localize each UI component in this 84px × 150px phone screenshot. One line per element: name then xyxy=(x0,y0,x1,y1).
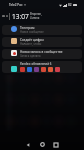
staticText: Нажмите, чтобы xyxy=(20,42,42,46)
staticText: Запись сделана xyxy=(20,54,41,58)
staticText: Новое сообщение xyxy=(20,30,44,34)
button[interactable]: Новая запись в сообществе xyxy=(2,49,82,59)
staticText: 4 июля xyxy=(30,16,40,20)
button[interactable]: Home xyxy=(35,139,49,150)
staticText: Новая запись в сообществе xyxy=(20,50,63,54)
staticText: 13:07 xyxy=(12,12,29,21)
staticText: Tele2 Рос xyxy=(9,3,23,7)
button[interactable]: Телеграм xyxy=(2,25,82,35)
staticText: 82 xyxy=(68,3,72,7)
button[interactable]: Back xyxy=(21,139,35,150)
staticText: Создаёт цифры xyxy=(20,38,44,42)
button[interactable]: Recents xyxy=(49,139,63,150)
staticText: Телеграм xyxy=(20,26,35,30)
staticText: Yandex: обновлений 6 xyxy=(20,62,52,66)
button[interactable]: Создаёт цифры xyxy=(2,37,82,47)
staticText: Вторник, xyxy=(30,12,42,16)
button[interactable]: Yandex: обновлений 6 xyxy=(2,61,82,73)
